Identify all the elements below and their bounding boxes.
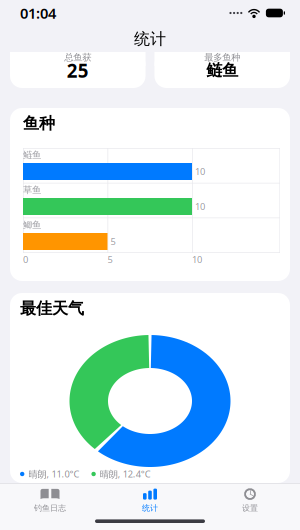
staticText: 草鱼 xyxy=(23,184,41,196)
staticText: 最佳天气 xyxy=(20,299,84,318)
staticText: 0 xyxy=(23,253,28,266)
staticText: 鱼种 xyxy=(23,114,55,133)
staticText: 统计 xyxy=(142,503,158,513)
staticText: 统计 xyxy=(134,29,166,49)
staticText: 设置 xyxy=(242,503,258,513)
staticText: 10 xyxy=(195,200,205,213)
staticText: 10 xyxy=(195,165,205,178)
staticText: 鲢鱼 xyxy=(206,61,238,80)
staticText: 鲢鱼 xyxy=(23,149,41,161)
staticText: 5 xyxy=(110,235,115,248)
staticText: 晴朗, 12.4°C xyxy=(100,468,151,480)
staticText: 25 xyxy=(67,58,89,83)
staticText: 5 xyxy=(107,253,112,266)
staticText: 10 xyxy=(192,253,202,266)
button[interactable]: 钓鱼日志 xyxy=(0,482,100,518)
staticText: 最多鱼种 xyxy=(204,52,240,63)
staticText: 钓鱼日志 xyxy=(34,503,66,513)
button[interactable]: 设置 xyxy=(200,482,300,518)
staticText: 晴朗, 11.0°C xyxy=(28,468,79,480)
staticText: 01:04 xyxy=(20,3,56,23)
staticText: 总鱼获 xyxy=(64,52,91,63)
button[interactable]: 统计 xyxy=(100,482,200,518)
staticText: 鲫鱼 xyxy=(23,219,41,231)
